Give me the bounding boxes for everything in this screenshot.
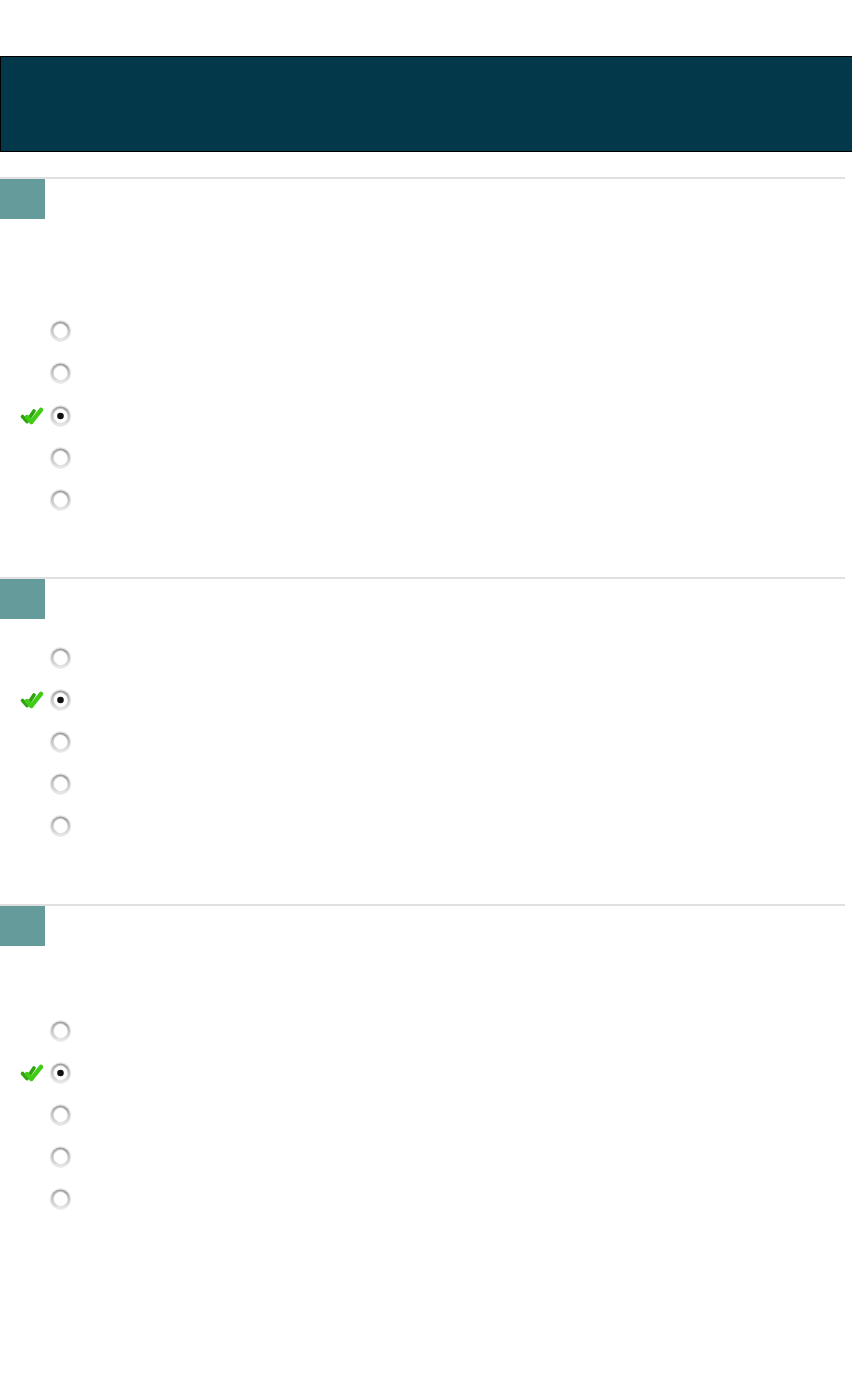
button[interactable]: Question 3 option 2, selected, correct <box>0 1052 845 1094</box>
button[interactable]: Question 1 option 3, selected, correct <box>0 395 845 437</box>
button[interactable]: Question 2 option 5 <box>0 805 845 847</box>
button[interactable]: Question 2 option 4 <box>0 763 845 805</box>
button[interactable]: Question 1 option 5 <box>0 479 845 521</box>
button[interactable]: Question 3 option 5 <box>0 1178 845 1220</box>
button[interactable]: Question 3 option 4 <box>0 1136 845 1178</box>
button[interactable]: Question 2 option 3 <box>0 721 845 763</box>
button[interactable]: Question 2 option 2, selected, correct <box>0 679 845 721</box>
button[interactable]: Question 3 option 1 <box>0 1010 845 1052</box>
button[interactable]: Question 1 option 1 <box>0 310 845 352</box>
button[interactable]: Question 3 option 3 <box>0 1094 845 1136</box>
button[interactable]: Question 1 option 4 <box>0 437 845 479</box>
button[interactable]: Question 1 option 2 <box>0 352 845 394</box>
button[interactable]: Question 2 option 1 <box>0 637 845 679</box>
